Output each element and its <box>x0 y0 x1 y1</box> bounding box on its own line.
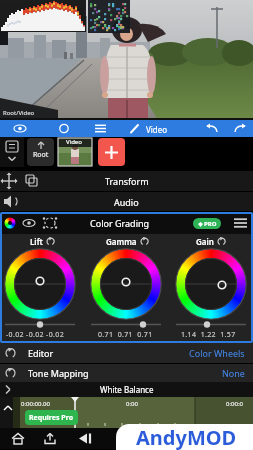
staticText: -0.02 -0.02 -0.02 <box>6 330 65 340</box>
staticText: 0:00:0 <box>226 400 243 408</box>
button[interactable]: PRO <box>193 218 221 229</box>
button[interactable]: Root <box>27 138 54 166</box>
button[interactable]: AndyMOD <box>116 424 253 450</box>
staticText: Transform <box>105 175 149 187</box>
staticText: Gain <box>196 236 214 247</box>
staticText: White Balance <box>100 384 154 395</box>
staticText: PRO <box>204 220 217 228</box>
button[interactable]: Video <box>58 138 92 166</box>
button[interactable]: Transform <box>0 171 253 191</box>
button[interactable] <box>34 120 70 137</box>
button[interactable] <box>225 120 253 137</box>
button[interactable]: Color Grading <box>0 212 253 234</box>
staticText: AndyMOD <box>136 424 237 450</box>
button[interactable]: Audio <box>0 192 253 211</box>
button[interactable]: White Balance <box>0 382 253 397</box>
staticText: Requires Pro <box>29 413 74 423</box>
staticText: None <box>222 367 245 379</box>
staticText: Root/Video <box>3 109 35 117</box>
button[interactable] <box>0 120 34 137</box>
staticText: Editor <box>28 347 54 359</box>
staticText: Video <box>146 124 168 135</box>
button[interactable] <box>104 120 170 137</box>
button[interactable]: Requires Pro <box>25 410 78 425</box>
button[interactable] <box>169 428 253 449</box>
button[interactable] <box>70 120 104 137</box>
staticText: Color Wheels <box>189 347 245 359</box>
staticText: Video <box>66 138 82 146</box>
button[interactable] <box>85 428 169 449</box>
staticText: Color Grading <box>90 217 150 229</box>
staticText: 1.14 1.22 1.57 <box>181 330 236 340</box>
staticText: Root <box>33 150 49 160</box>
staticText: Tone Mapping <box>28 367 89 379</box>
staticText: 0:00:00.00 <box>21 400 50 408</box>
button[interactable]: Tone Mapping <box>0 364 253 382</box>
button[interactable]: Editor <box>0 343 253 363</box>
staticText: Gamma <box>106 236 137 247</box>
staticText: Lift <box>30 236 43 247</box>
button[interactable] <box>0 137 24 167</box>
staticText: 0.71 0.71 0.71 <box>98 330 153 340</box>
button[interactable] <box>0 428 85 449</box>
staticText: 0:00 <box>126 400 138 408</box>
button[interactable] <box>197 120 225 137</box>
staticText: Audio <box>114 196 139 208</box>
button[interactable] <box>98 138 125 166</box>
